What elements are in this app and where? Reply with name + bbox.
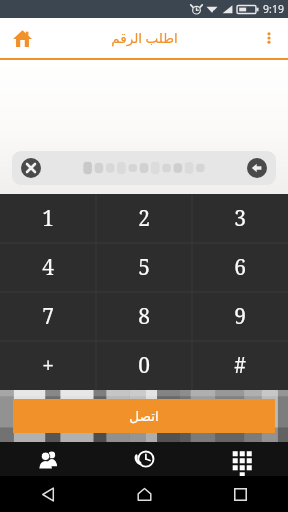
staticText: 8 — [138, 302, 150, 331]
button[interactable]: Back — [0, 476, 96, 512]
button[interactable]: 0 — [96, 341, 192, 390]
button[interactable]: 9 — [192, 292, 288, 341]
button[interactable]: Home — [6, 22, 38, 54]
button[interactable]: Clear — [18, 155, 44, 181]
staticText: 2 — [138, 204, 150, 233]
button[interactable]: 2 — [96, 194, 192, 243]
staticText: 5 — [138, 253, 150, 282]
button[interactable]: 8 — [96, 292, 192, 341]
staticText: 3 — [234, 204, 246, 233]
button[interactable]: Dialpad — [192, 442, 288, 476]
staticText: # — [234, 351, 246, 380]
button[interactable]: # — [192, 341, 288, 390]
button[interactable]: More options — [254, 23, 284, 53]
staticText: 6 — [234, 253, 246, 282]
button[interactable]: Home — [96, 476, 192, 512]
staticText: 0 — [138, 351, 150, 380]
staticText: 7 — [42, 302, 54, 331]
staticText: 9 — [234, 302, 246, 331]
button[interactable]: 7 — [0, 292, 96, 341]
staticText: 4 — [42, 253, 54, 282]
staticText: 1 — [42, 204, 54, 233]
button[interactable]: + — [0, 341, 96, 390]
staticText: اطلب الرقم — [111, 29, 178, 47]
button[interactable]: Backspace — [244, 155, 270, 181]
staticText: اتصل — [129, 408, 159, 424]
button[interactable]: Contacts — [0, 442, 96, 476]
button[interactable]: 6 — [192, 243, 288, 292]
button[interactable]: اتصل — [13, 399, 275, 433]
staticText: 9:19 — [263, 2, 284, 16]
button[interactable]: Recents — [192, 476, 288, 512]
button[interactable]: Recent calls — [96, 442, 192, 476]
button[interactable]: 4 — [0, 243, 96, 292]
button[interactable]: 3 — [192, 194, 288, 243]
button[interactable]: 1 — [0, 194, 96, 243]
staticText: + — [42, 351, 54, 380]
button[interactable]: 5 — [96, 243, 192, 292]
